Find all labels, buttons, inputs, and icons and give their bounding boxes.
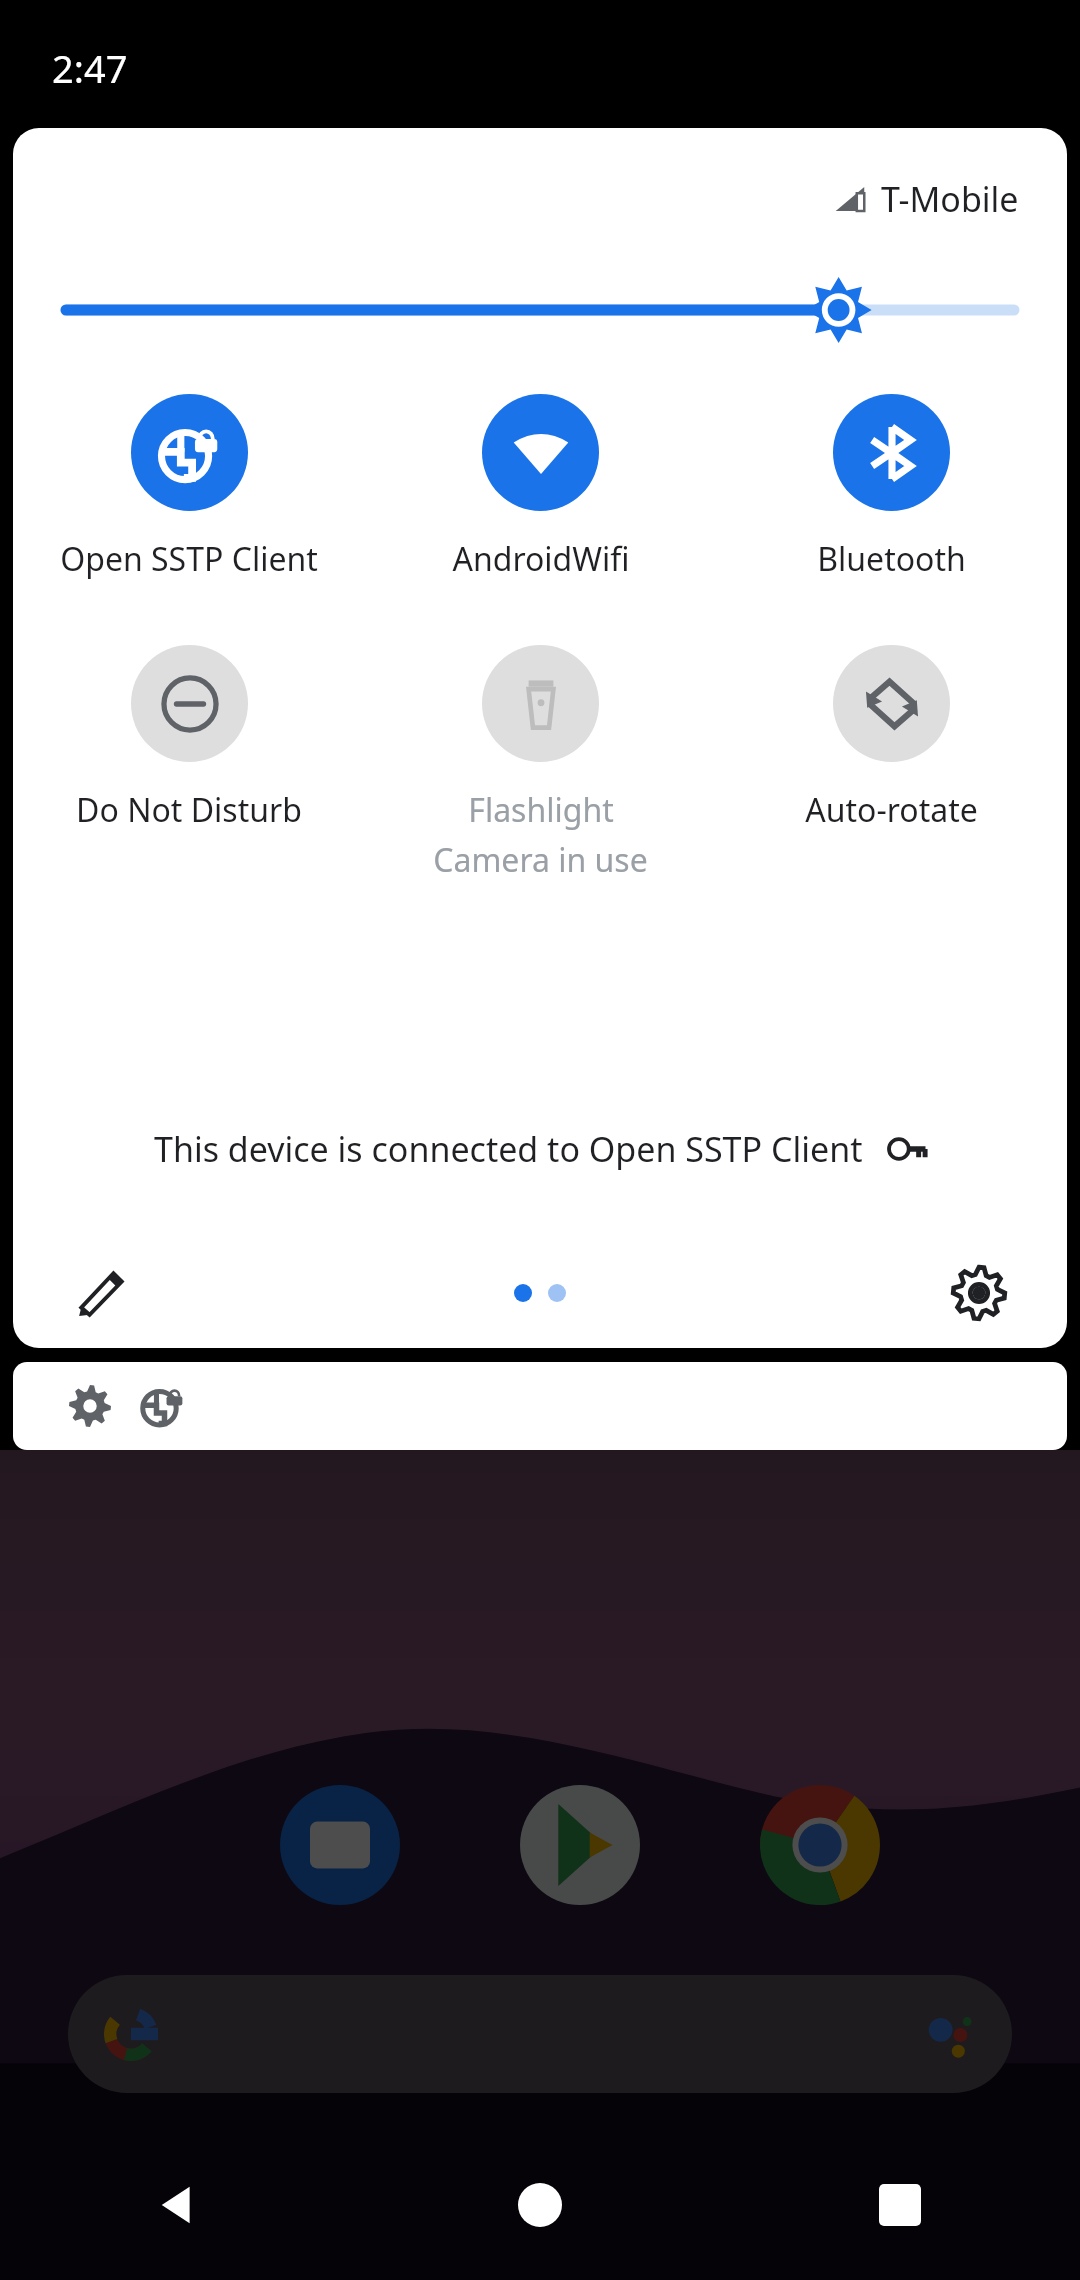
other: Signal bbox=[833, 182, 867, 216]
button[interactable]: Chrome bbox=[760, 1785, 880, 1905]
button[interactable]: Flashlight bbox=[365, 645, 716, 882]
button[interactable]: Edit tiles bbox=[67, 1259, 135, 1327]
staticText: Open SSTP Client bbox=[60, 537, 318, 581]
staticText: Auto-rotate bbox=[805, 788, 978, 832]
staticText: Flashlight bbox=[468, 788, 614, 832]
staticText: This device is connected to Open SSTP Cl… bbox=[154, 1126, 863, 1172]
other: VPN active bbox=[141, 1384, 185, 1428]
button[interactable]: Google Search bbox=[68, 1975, 1012, 2093]
staticText: AndroidWifi bbox=[452, 537, 630, 581]
button[interactable]: Do Not Disturb bbox=[13, 645, 365, 832]
button[interactable]: Bluetooth bbox=[716, 394, 1067, 581]
button[interactable]: Home bbox=[360, 2130, 720, 2280]
button[interactable]: Brightness bbox=[13, 262, 1067, 358]
other: Settings notification bbox=[69, 1385, 111, 1427]
button[interactable]: This device is connected to Open SSTP Cl… bbox=[13, 1126, 1067, 1172]
button[interactable]: AndroidWifi bbox=[365, 394, 716, 581]
staticText: Bluetooth bbox=[817, 537, 966, 581]
staticText: Camera in use bbox=[433, 838, 648, 882]
button[interactable]: Settings notification bbox=[13, 1362, 1067, 1450]
other: Google Assistant bbox=[924, 2008, 976, 2060]
button[interactable]: Play Store bbox=[520, 1785, 640, 1905]
button[interactable]: Recent apps bbox=[720, 2130, 1080, 2280]
button[interactable]: Messages bbox=[280, 1785, 400, 1905]
staticText: Do Not Disturb bbox=[76, 788, 302, 832]
staticText: T-Mobile bbox=[881, 176, 1019, 222]
button[interactable]: Back bbox=[0, 2130, 360, 2280]
other: Google Search bbox=[104, 2007, 158, 2061]
staticText: 2:47 bbox=[52, 42, 128, 94]
button[interactable]: Auto-rotate bbox=[716, 645, 1067, 832]
button[interactable]: Settings bbox=[945, 1259, 1013, 1327]
button[interactable]: Open SSTP Client bbox=[13, 394, 365, 581]
